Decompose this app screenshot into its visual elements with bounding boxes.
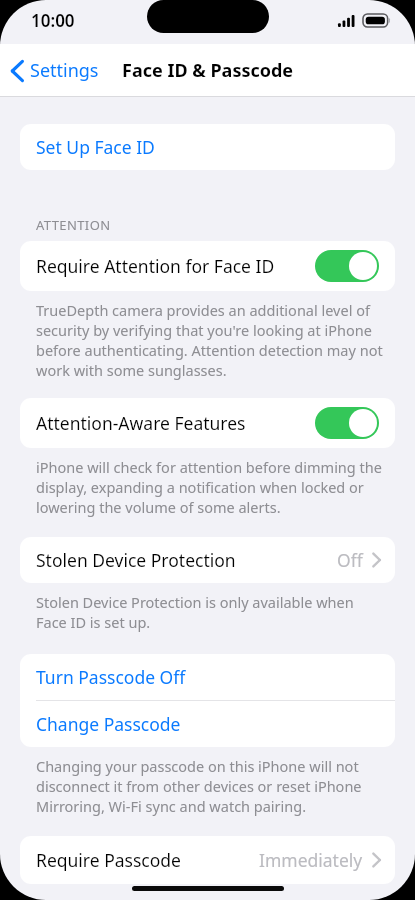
staticText: Require Passcode	[36, 848, 259, 872]
button[interactable]: Settings	[0, 50, 109, 91]
staticText: Changing your passcode on this iPhone wi…	[36, 756, 387, 816]
staticText: Stolen Device Protection is only availab…	[36, 592, 387, 632]
button[interactable]: Attention-Aware Features	[315, 407, 379, 439]
staticText: Face ID & Passcode	[122, 58, 294, 83]
staticText: Change Passcode	[36, 712, 181, 736]
button[interactable]: Stolen Device Protection	[20, 537, 395, 583]
button[interactable]: Require Passcode	[20, 836, 395, 884]
button[interactable]: Require Attention for Face ID	[315, 250, 379, 282]
staticText: Off	[337, 548, 363, 572]
staticText: Immediately	[259, 848, 363, 872]
button[interactable]: Set Up Face ID	[20, 124, 395, 170]
staticText: ATTENTION	[36, 216, 111, 234]
button[interactable]: Require Attention for Face ID	[20, 241, 395, 291]
button[interactable]: Turn Passcode Off	[20, 654, 395, 700]
staticText: 10:00	[31, 9, 75, 32]
button[interactable]: Change Passcode	[20, 701, 395, 747]
button[interactable]: Attention-Aware Features	[20, 398, 395, 448]
staticText: Turn Passcode Off	[36, 665, 186, 689]
staticText: Stolen Device Protection	[36, 548, 337, 572]
staticText: Attention-Aware Features	[36, 411, 315, 435]
staticText: Require Attention for Face ID	[36, 254, 315, 278]
staticText: TrueDepth camera provides an additional …	[36, 300, 387, 380]
staticText: iPhone will check for attention before d…	[36, 457, 387, 517]
staticText: Set Up Face ID	[36, 135, 155, 159]
staticText: Settings	[30, 58, 99, 83]
